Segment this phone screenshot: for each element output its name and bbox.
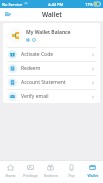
button[interactable]: My Wallet Balance (3, 23, 100, 47)
staticText: Privilege (23, 173, 38, 178)
staticText: Account Statement (21, 79, 91, 86)
staticText: 4:44 PM (48, 2, 64, 7)
button[interactable]: Verify email (3, 90, 100, 103)
staticText: My Wallet Balance (26, 29, 71, 36)
button[interactable]: Home (0, 160, 20, 183)
button[interactable]: Wallet (82, 160, 103, 183)
button[interactable]: Privilege (20, 160, 40, 183)
staticText: No Service (2, 2, 23, 7)
button[interactable]: Menu (3, 10, 12, 19)
staticText: Home (5, 173, 16, 178)
staticText: Redeem (44, 173, 58, 178)
staticText: 17% (85, 2, 93, 7)
staticText: Activate Code (21, 51, 91, 58)
staticText: Wallet (42, 10, 62, 19)
button[interactable]: Redeem (40, 160, 61, 183)
button[interactable]: Account Statement (3, 76, 100, 89)
staticText: Verify email (21, 93, 91, 100)
button[interactable]: Activate Code (3, 48, 100, 61)
button[interactable]: Redeem (3, 62, 100, 75)
staticText: Pay (68, 173, 75, 178)
staticText: Wallet (87, 173, 99, 178)
staticText: Redeem (21, 65, 91, 72)
button[interactable]: Pay (61, 160, 82, 183)
